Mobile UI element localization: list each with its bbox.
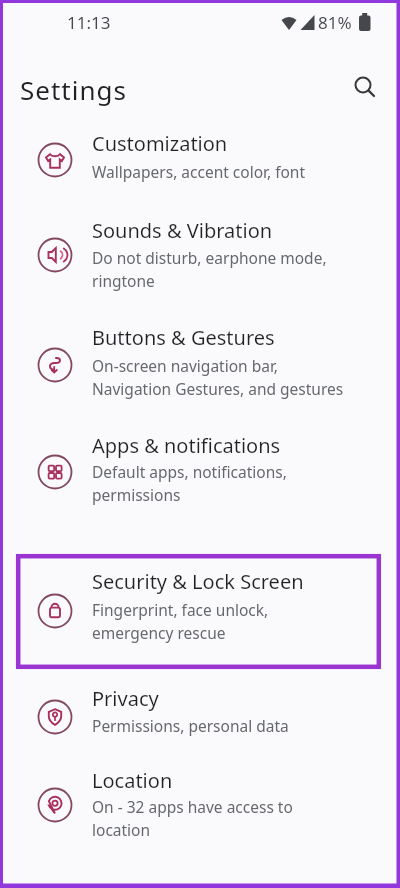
- button[interactable]: [0, 118, 400, 190]
- staticText: Settings: [20, 72, 127, 107]
- staticText: Security & Lock Screen: [92, 568, 304, 595]
- staticText: On-screen navigation bar, Navigation Ges…: [92, 355, 344, 400]
- staticText: 11:13: [67, 11, 111, 34]
- button[interactable]: [0, 673, 400, 745]
- staticText: Wallpapers, accent color, font: [92, 161, 306, 182]
- staticText: 81%: [318, 11, 352, 34]
- staticText: Permissions, personal data: [92, 715, 289, 736]
- staticText: Sounds & Vibration: [92, 217, 273, 244]
- staticText: Fingerprint, face unlock, emergency resc…: [92, 599, 269, 644]
- staticText: Buttons & Gestures: [92, 324, 275, 351]
- staticText: Apps & notifications: [92, 432, 281, 459]
- staticText: Privacy: [92, 685, 159, 712]
- staticText: Do not disturb, earphone mode, ringtone: [92, 247, 327, 292]
- button[interactable]: [0, 312, 400, 408]
- button[interactable]: [348, 70, 382, 104]
- button[interactable]: [0, 420, 400, 516]
- staticText: Customization: [92, 130, 228, 157]
- staticText: Location: [92, 767, 173, 794]
- staticText: On - 32 apps have access to location: [92, 796, 293, 841]
- button[interactable]: [0, 556, 400, 652]
- button[interactable]: [0, 755, 400, 851]
- button[interactable]: [0, 205, 400, 301]
- staticText: Default apps, notifications, permissions: [92, 461, 287, 506]
